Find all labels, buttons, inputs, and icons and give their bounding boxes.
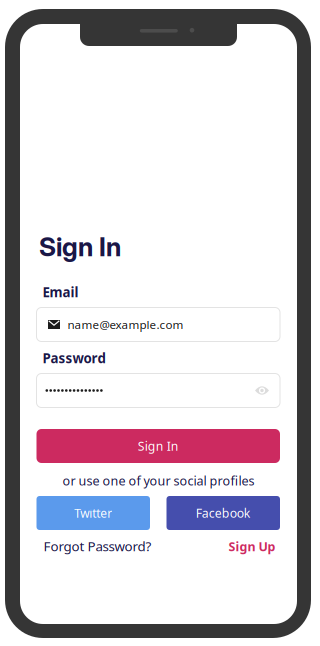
staticText: Twitter xyxy=(74,505,112,521)
staticText: name@example.com xyxy=(67,317,183,332)
staticText: Facebook xyxy=(196,505,251,521)
staticText: or use one of your social profiles xyxy=(62,472,254,489)
button[interactable]: Sign Up xyxy=(228,538,275,555)
staticText: Sign Up xyxy=(228,538,275,555)
staticText: Email xyxy=(42,283,78,301)
button[interactable]: Forgot Password? xyxy=(43,537,151,555)
staticText: Sign In xyxy=(138,438,179,454)
staticText: Sign In xyxy=(39,231,121,263)
button[interactable]: Sign In xyxy=(36,429,280,463)
button[interactable]: Twitter xyxy=(36,496,150,530)
staticText: Password xyxy=(42,349,105,367)
button[interactable]: Facebook xyxy=(166,496,280,530)
staticText: Forgot Password? xyxy=(43,537,151,555)
